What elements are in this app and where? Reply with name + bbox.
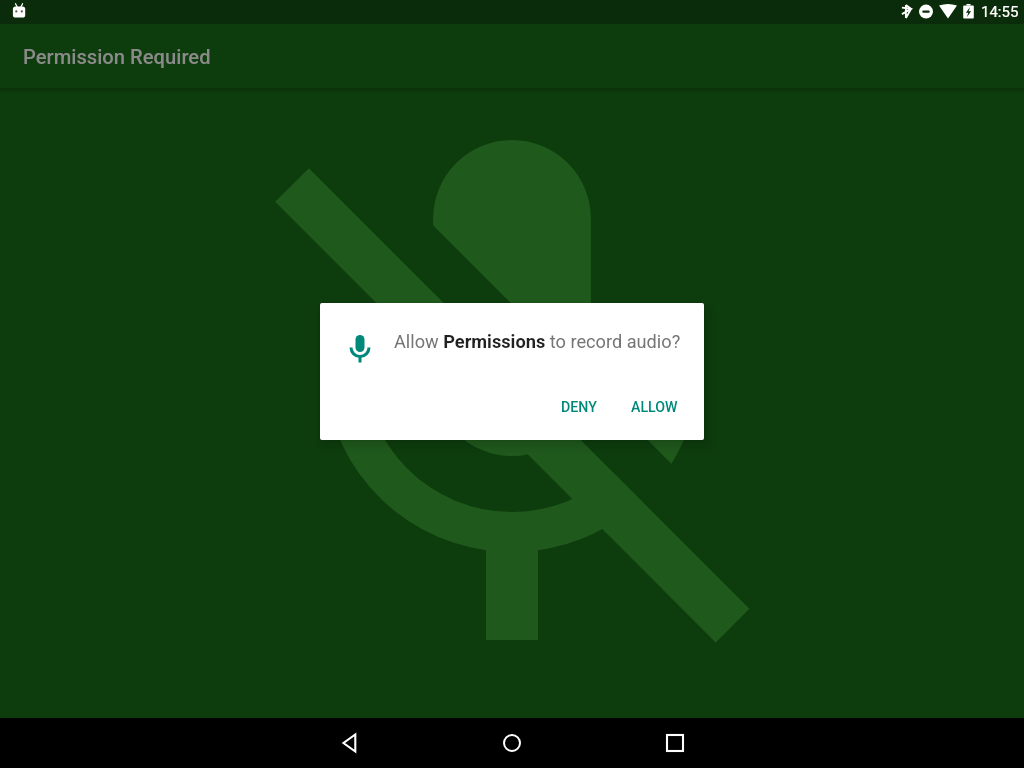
staticText: Allow Permissions to record audio? — [394, 331, 681, 352]
button[interactable]: Back — [318, 718, 382, 768]
staticText: Permission Required — [23, 45, 211, 69]
staticText: ALLOW — [631, 399, 678, 416]
staticText: 14:55 — [981, 3, 1019, 21]
button[interactable]: ALLOW — [623, 393, 686, 422]
staticText: DENY — [561, 399, 597, 416]
button[interactable]: Recent apps — [643, 718, 707, 768]
button[interactable]: DENY — [553, 393, 605, 422]
button[interactable]: Home — [480, 718, 544, 768]
